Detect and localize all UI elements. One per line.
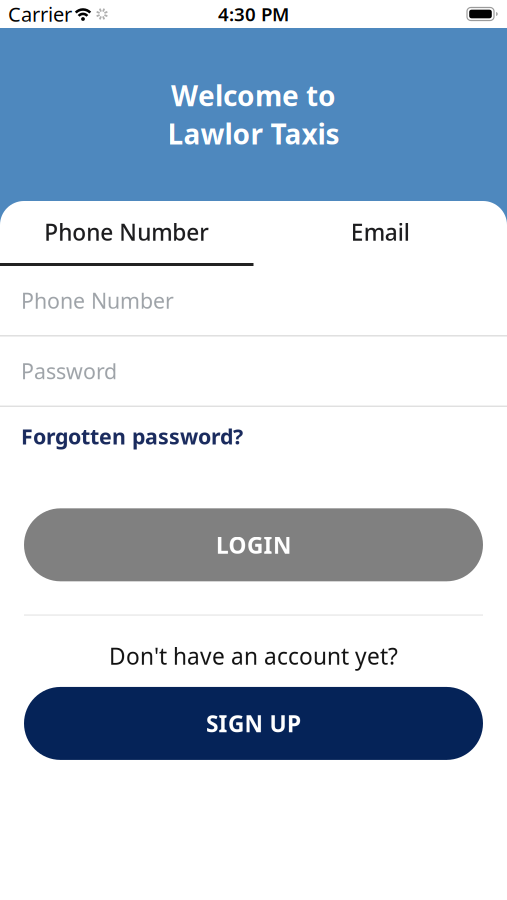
staticText: Phone Number [21,286,174,315]
staticText: SIGN UP [206,708,301,738]
staticText: Lawlor Taxis [167,115,339,152]
button[interactable]: Email [253,201,507,263]
staticText: 4:30 PM [218,2,289,26]
staticText: Email [351,217,410,247]
staticText: Don't have an account yet? [109,641,398,671]
staticText: Password [21,357,117,385]
button[interactable]: SIGN UP [24,687,483,760]
button[interactable]: Phone Number [0,266,507,335]
staticText: LOGIN [216,530,291,560]
staticText: Forgotten password? [21,422,243,450]
staticText: Carrier [8,1,72,27]
button[interactable]: Forgotten password? [0,422,507,450]
button[interactable]: Password [0,336,507,405]
button[interactable]: LOGIN [24,508,483,581]
staticText: Welcome to [171,77,336,114]
staticText: Phone Number [44,217,209,247]
button[interactable]: Phone Number [0,201,253,263]
